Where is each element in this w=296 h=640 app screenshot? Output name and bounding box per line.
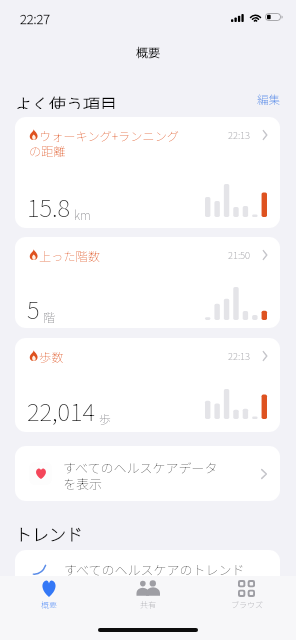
staticText: 22:13 bbox=[228, 349, 250, 363]
staticText: 共有 bbox=[140, 599, 156, 611]
staticText: 15.8 bbox=[27, 189, 71, 224]
staticText: ブラウズ bbox=[231, 599, 263, 611]
button[interactable]: 編集 bbox=[257, 91, 280, 109]
staticText: すべてのヘルスケアデータ bbox=[63, 458, 218, 477]
staticText: 22,014 bbox=[27, 393, 96, 428]
staticText: 概要 bbox=[136, 43, 161, 60]
staticText: 22:13 bbox=[228, 128, 250, 142]
button[interactable]: 歩数 bbox=[15, 338, 280, 432]
staticText: 歩数 bbox=[39, 348, 64, 366]
button[interactable]: すべてのヘルスケアデータ bbox=[15, 446, 280, 501]
staticText: 階 bbox=[43, 308, 56, 325]
staticText: ウォーキング+ランニング bbox=[39, 127, 180, 145]
button[interactable]: Browse tab bbox=[197, 576, 296, 640]
staticText: 21:50 bbox=[228, 248, 250, 262]
staticText: すべてのヘルスケアのトレンド bbox=[64, 560, 245, 579]
staticText: トレンド bbox=[15, 521, 83, 546]
button[interactable]: すべてのヘルスケアのトレンド bbox=[15, 550, 280, 596]
staticText: 編集 bbox=[257, 91, 280, 107]
staticText: 概要 bbox=[41, 599, 57, 611]
button[interactable]: 上った階数 bbox=[15, 237, 280, 328]
staticText: 歩 bbox=[99, 410, 112, 427]
staticText: 5 bbox=[27, 291, 40, 326]
staticText: 22:27 bbox=[20, 9, 51, 28]
staticText: を表示 bbox=[63, 474, 103, 493]
button[interactable]: Sharing tab bbox=[98, 576, 197, 640]
staticText: 上った階数 bbox=[39, 247, 100, 265]
staticText: の距離 bbox=[29, 142, 66, 160]
staticText: よく使う項目 bbox=[15, 91, 117, 109]
staticText: km bbox=[74, 206, 91, 223]
button[interactable]: ウォーキング+ランニング bbox=[15, 117, 280, 228]
button[interactable]: Summary tab bbox=[0, 576, 98, 640]
